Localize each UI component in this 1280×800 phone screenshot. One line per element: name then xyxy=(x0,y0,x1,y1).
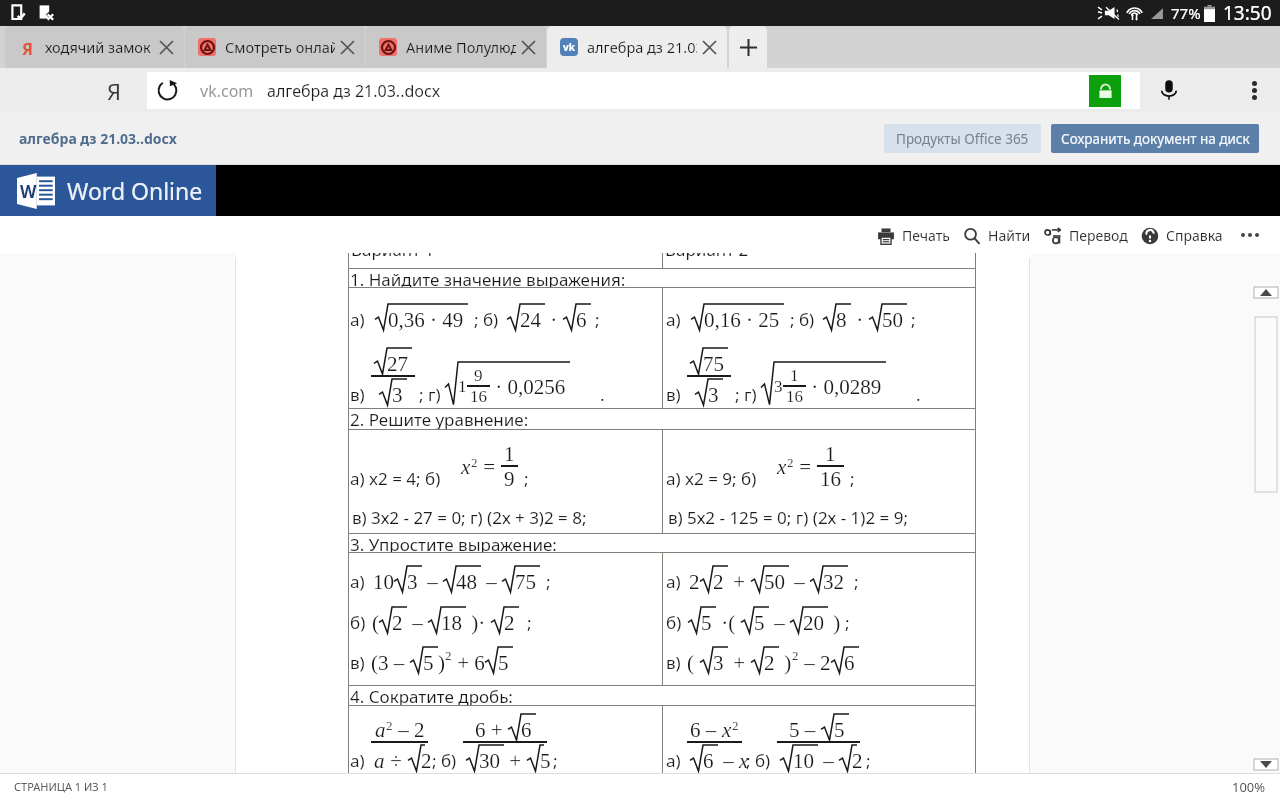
staticText: 6 xyxy=(576,308,587,331)
staticText: 24 xyxy=(520,308,541,331)
staticText: Сохранить документ на диск xyxy=(1061,130,1250,148)
button[interactable]: Продукты Office 365 xyxy=(884,124,1041,153)
staticText: – 2 xyxy=(393,718,425,741)
staticText: Смотреть онлайн xyxy=(225,37,335,57)
staticText: ( xyxy=(372,611,379,634)
staticText: (3 – xyxy=(371,651,410,674)
button[interactable]: Сохранить документ на диск xyxy=(1051,124,1259,153)
staticText: 5 xyxy=(834,718,845,741)
staticText: в) xyxy=(666,383,681,406)
staticText: = xyxy=(478,455,501,478)
button[interactable]: Найти xyxy=(963,226,1031,245)
button[interactable]: More xyxy=(1237,222,1263,248)
staticText: 6 – xyxy=(690,718,722,741)
staticText: x xyxy=(722,718,732,741)
staticText: ) xyxy=(438,651,445,674)
staticText: 10 xyxy=(793,749,814,772)
staticText: 2 xyxy=(504,611,515,634)
staticText: 16 xyxy=(820,467,841,490)
button[interactable]: Close tab xyxy=(156,37,176,57)
button[interactable]: Печать xyxy=(877,226,950,245)
staticText: – xyxy=(481,570,502,593)
staticText: 2 xyxy=(689,570,700,593)
staticText: 6 xyxy=(703,749,714,772)
staticText: 2 xyxy=(787,455,794,469)
staticText: 50 xyxy=(882,308,903,331)
staticText: 100% xyxy=(1232,778,1266,796)
staticText: ÷ xyxy=(385,749,408,772)
button[interactable]: Scroll up xyxy=(1254,287,1278,298)
staticText: )· xyxy=(466,611,491,634)
staticText: 10 xyxy=(373,570,394,593)
button[interactable]: Справка xyxy=(1141,226,1223,245)
staticText: 9 xyxy=(474,366,483,385)
staticText: 75 xyxy=(515,570,536,593)
staticText: 27 xyxy=(387,352,408,375)
staticText: ; xyxy=(850,467,855,490)
button[interactable]: Yandex xyxy=(98,74,131,107)
staticText: 16 xyxy=(786,387,803,406)
staticText: 1 xyxy=(458,377,467,396)
staticText: 16 xyxy=(470,387,487,406)
staticText: алгебра дз 21.03. xyxy=(587,37,697,57)
staticText: a) xyxy=(666,570,681,593)
button[interactable]: Close tab xyxy=(699,37,719,57)
staticText: Вариант 2 xyxy=(665,253,749,261)
staticText: 2. Решите уравнение: xyxy=(350,408,529,430)
staticText: – 2 xyxy=(799,651,831,674)
staticText: a) xyxy=(666,749,681,772)
staticText: a) x2 = 9; б) xyxy=(666,467,757,490)
button[interactable]: Close tab xyxy=(337,37,357,57)
staticText: алгебра дз 21.03..docx xyxy=(19,129,177,148)
staticText: ·( xyxy=(716,611,741,634)
staticText: ( xyxy=(687,651,700,674)
staticText: · 0,0256 xyxy=(490,375,566,398)
staticText: Вариант 1 xyxy=(351,253,435,261)
staticText: 3 xyxy=(774,377,783,396)
staticText: алгебра дз 21.03..docx xyxy=(267,80,441,102)
staticText: · xyxy=(851,308,869,331)
staticText: 2 xyxy=(713,570,724,593)
staticText: 3 xyxy=(713,651,724,674)
staticText: 13:50 xyxy=(1223,0,1272,26)
staticText: 5 xyxy=(423,651,434,674)
staticText: 2 xyxy=(445,648,452,662)
button[interactable]: Reload xyxy=(147,72,187,109)
button[interactable]: vk xyxy=(547,26,727,68)
button[interactable]: Смотреть онлайн xyxy=(185,26,365,68)
staticText: 4. Сократите дробь: xyxy=(350,685,513,706)
button[interactable]: Перевод xyxy=(1044,226,1128,245)
staticText: 1. Найдите значение выражения: xyxy=(350,268,626,288)
staticText: СТРАНИЦА 1 ИЗ 1 xyxy=(14,779,108,794)
button[interactable]: Voice search xyxy=(1148,69,1190,111)
staticText: ; г) xyxy=(419,383,441,406)
staticText: – xyxy=(718,749,739,772)
staticText: ; б) xyxy=(474,308,499,331)
staticText: Найти xyxy=(988,226,1031,245)
staticText: ; б) xyxy=(746,749,771,772)
staticText: – xyxy=(422,570,443,593)
staticText: – xyxy=(407,611,428,634)
staticText: 30 xyxy=(479,749,500,772)
staticText: ) xyxy=(779,651,792,674)
button[interactable]: Secure connection xyxy=(1089,75,1121,107)
staticText: = xyxy=(794,455,817,478)
button[interactable]: Browser menu xyxy=(1234,70,1274,110)
staticText: ; б) xyxy=(790,308,815,331)
staticText: 77% xyxy=(1171,3,1201,23)
staticText: б) xyxy=(666,611,682,634)
staticText: Продукты Office 365 xyxy=(896,130,1029,148)
button[interactable]: New tab xyxy=(729,26,767,68)
button[interactable]: Scroll down xyxy=(1254,759,1278,770)
staticText: 3 xyxy=(708,383,719,406)
staticText: vk.com xyxy=(200,80,254,102)
staticText: 5 xyxy=(754,611,765,634)
staticText: 3. Упростите выражение: xyxy=(350,533,557,553)
staticText: 8 xyxy=(836,308,847,331)
button[interactable]: Аниме Полулюди xyxy=(366,26,546,68)
staticText: – xyxy=(769,611,790,634)
staticText: a xyxy=(375,718,386,741)
button[interactable]: Scrollbar xyxy=(1255,317,1277,492)
button[interactable]: Я xyxy=(5,26,184,68)
button[interactable]: Close tab xyxy=(518,37,538,57)
